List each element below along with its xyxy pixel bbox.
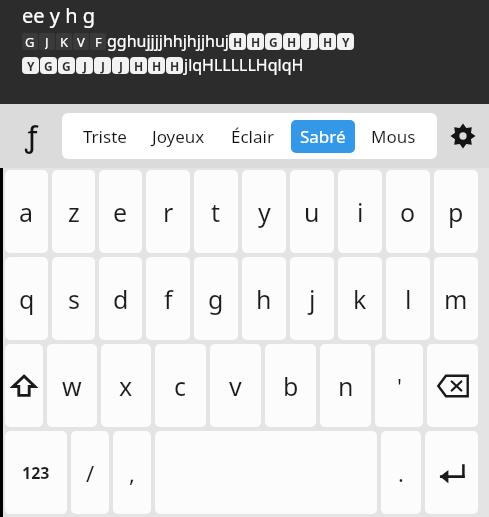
- button[interactable]: Triste: [74, 120, 136, 153]
- button[interactable]: k: [338, 257, 382, 340]
- button[interactable]: r: [146, 170, 190, 253]
- staticText: i: [357, 195, 364, 229]
- staticText: gghujjjjhhjhjjhuj: [107, 30, 229, 52]
- staticText: j: [309, 282, 316, 316]
- staticText: H: [251, 34, 261, 50]
- button[interactable]: v: [210, 344, 261, 427]
- button[interactable]: f: [146, 257, 190, 340]
- staticText: q: [19, 282, 35, 316]
- button[interactable]: t: [194, 170, 238, 253]
- button[interactable]: z: [52, 170, 95, 253]
- button[interactable]: l: [386, 257, 430, 340]
- staticText: c: [174, 369, 187, 403]
- button[interactable]: u: [290, 170, 334, 253]
- staticText: F: [95, 33, 102, 50]
- staticText: u: [304, 195, 320, 229]
- button[interactable]: Sabré: [291, 120, 355, 153]
- staticText: p: [448, 195, 464, 229]
- staticText: m: [444, 282, 468, 316]
- staticText: t: [211, 195, 221, 229]
- staticText: J: [45, 33, 49, 50]
- button[interactable]: j: [290, 257, 334, 340]
- staticText: Y: [342, 34, 350, 50]
- staticText: H: [287, 34, 297, 50]
- button[interactable]: Joyeux: [143, 120, 214, 153]
- button[interactable]: n: [320, 344, 371, 427]
- button[interactable]: o: [386, 170, 430, 253]
- button[interactable]: x: [101, 344, 151, 427]
- staticText: ee y h g: [22, 2, 96, 29]
- staticText: r: [163, 195, 174, 229]
- button[interactable]: ': [375, 344, 423, 427]
- staticText: ƒ: [25, 117, 38, 155]
- staticText: .: [398, 458, 404, 488]
- staticText: k: [353, 282, 367, 316]
- button[interactable]: q: [5, 257, 48, 340]
- button[interactable]: w: [47, 344, 97, 427]
- button[interactable]: c: [155, 344, 206, 427]
- staticText: Y: [27, 58, 35, 74]
- button[interactable]: g: [194, 257, 238, 340]
- staticText: ,: [129, 458, 135, 488]
- staticText: G: [62, 58, 71, 74]
- staticText: Sabré: [300, 125, 346, 148]
- button[interactable]: s: [52, 257, 95, 340]
- staticText: Triste: [83, 125, 127, 148]
- staticText: G: [44, 58, 53, 74]
- button[interactable]: Backspace: [427, 344, 478, 427]
- staticText: V: [77, 33, 85, 50]
- staticText: o: [400, 195, 416, 229]
- staticText: z: [68, 195, 80, 229]
- button[interactable]: 123: [5, 431, 67, 514]
- staticText: Joyeux: [152, 125, 205, 148]
- staticText: J: [308, 34, 312, 50]
- staticText: v: [229, 369, 242, 403]
- staticText: H: [323, 34, 333, 50]
- button[interactable]: ,: [113, 431, 151, 514]
- staticText: l: [405, 282, 412, 316]
- staticText: H: [233, 34, 243, 50]
- staticText: d: [113, 282, 129, 316]
- button[interactable]: h: [242, 257, 286, 340]
- staticText: jlqHLLLLLHqlqH: [184, 54, 304, 76]
- staticText: y: [258, 195, 271, 229]
- staticText: J: [101, 58, 105, 74]
- staticText: H: [134, 58, 144, 74]
- staticText: ': [397, 371, 402, 401]
- button[interactable]: e: [99, 170, 142, 253]
- button[interactable]: b: [265, 344, 316, 427]
- button[interactable]: .: [381, 431, 421, 514]
- staticText: /: [86, 458, 95, 488]
- staticText: H: [170, 58, 180, 74]
- staticText: H: [152, 58, 162, 74]
- staticText: Éclair: [231, 125, 274, 148]
- button[interactable]: p: [434, 170, 478, 253]
- button[interactable]: m: [434, 257, 478, 340]
- button[interactable]: Mous: [362, 120, 425, 153]
- staticText: Mous: [371, 125, 416, 148]
- staticText: J: [83, 58, 87, 74]
- staticText: K: [60, 33, 69, 50]
- staticText: b: [283, 369, 299, 403]
- button[interactable]: a: [5, 170, 48, 253]
- button[interactable]: d: [99, 257, 142, 340]
- staticText: h: [256, 282, 272, 316]
- staticText: e: [113, 195, 128, 229]
- staticText: J: [119, 58, 123, 74]
- button[interactable]: y: [242, 170, 286, 253]
- staticText: a: [19, 195, 34, 229]
- staticText: G: [25, 33, 35, 50]
- button[interactable]: /: [71, 431, 109, 514]
- staticText: s: [68, 282, 80, 316]
- button[interactable]: Enter: [425, 431, 478, 514]
- staticText: n: [338, 369, 354, 403]
- button[interactable]: Shift: [5, 344, 43, 427]
- staticText: x: [119, 369, 133, 403]
- staticText: g: [208, 282, 224, 316]
- button[interactable]: i: [338, 170, 382, 253]
- staticText: G: [269, 34, 278, 50]
- button[interactable]: Éclair: [222, 120, 283, 153]
- button[interactable]: Settings: [437, 104, 489, 168]
- button[interactable]: Font style: [0, 104, 62, 168]
